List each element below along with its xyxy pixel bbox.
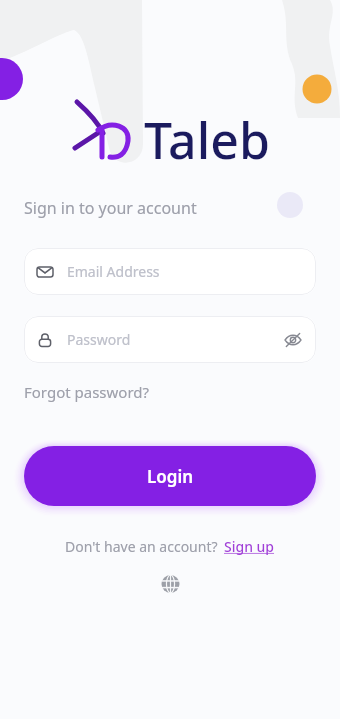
staticText: Don't have an account? (65, 537, 218, 556)
staticText: Login (147, 465, 194, 488)
button[interactable]: Login (24, 446, 316, 506)
staticText: Taleb (144, 106, 270, 174)
button[interactable]: Email Address (24, 248, 316, 295)
button[interactable]: Forgot password? (24, 382, 150, 402)
button[interactable]: Sign up (224, 537, 275, 556)
staticText: Sign in to your account (24, 197, 197, 219)
staticText: Email Address (67, 262, 160, 281)
button[interactable]: Change language (157, 570, 183, 596)
button[interactable]: Show password (282, 329, 304, 351)
button[interactable]: Password (24, 316, 316, 363)
staticText: Password (67, 330, 131, 349)
